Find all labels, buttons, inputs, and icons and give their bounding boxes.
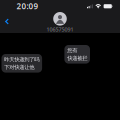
button[interactable]: Back [0,11,14,34]
staticText: 您有 [67,47,77,54]
staticText: 昨天快递到了吗 [4,56,39,63]
staticText: 下对快递让他 [4,64,34,70]
staticText: 106575091 [46,26,73,33]
staticText: 20:09 [16,1,38,11]
staticText: 快递被拦 [67,55,87,61]
